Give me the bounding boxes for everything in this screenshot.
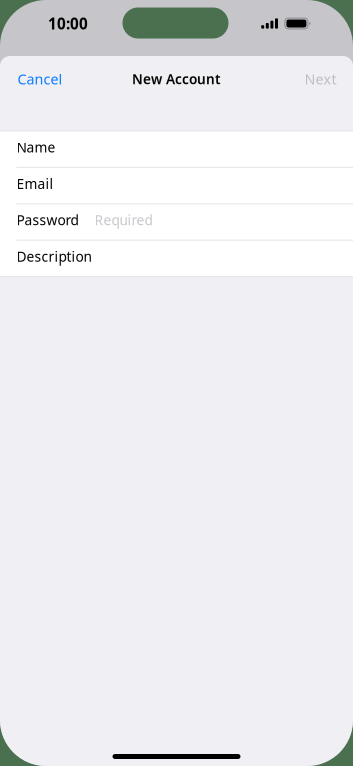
staticText: Required (94, 211, 152, 229)
button[interactable]: Email (0, 167, 353, 204)
staticText: Name (16, 138, 55, 156)
staticText: Next (304, 69, 336, 89)
button[interactable]: Password (0, 204, 353, 240)
staticText: 10:00 (48, 13, 88, 34)
staticText: Email (16, 174, 53, 193)
button[interactable]: Name (0, 131, 353, 167)
button[interactable]: Description (0, 240, 353, 277)
button[interactable]: Cancel (0, 60, 80, 98)
staticText: Password (16, 211, 78, 229)
button[interactable]: Next (288, 60, 353, 98)
staticText: Description (16, 247, 91, 266)
staticText: New Account (132, 70, 221, 88)
staticText: Cancel (17, 69, 62, 89)
